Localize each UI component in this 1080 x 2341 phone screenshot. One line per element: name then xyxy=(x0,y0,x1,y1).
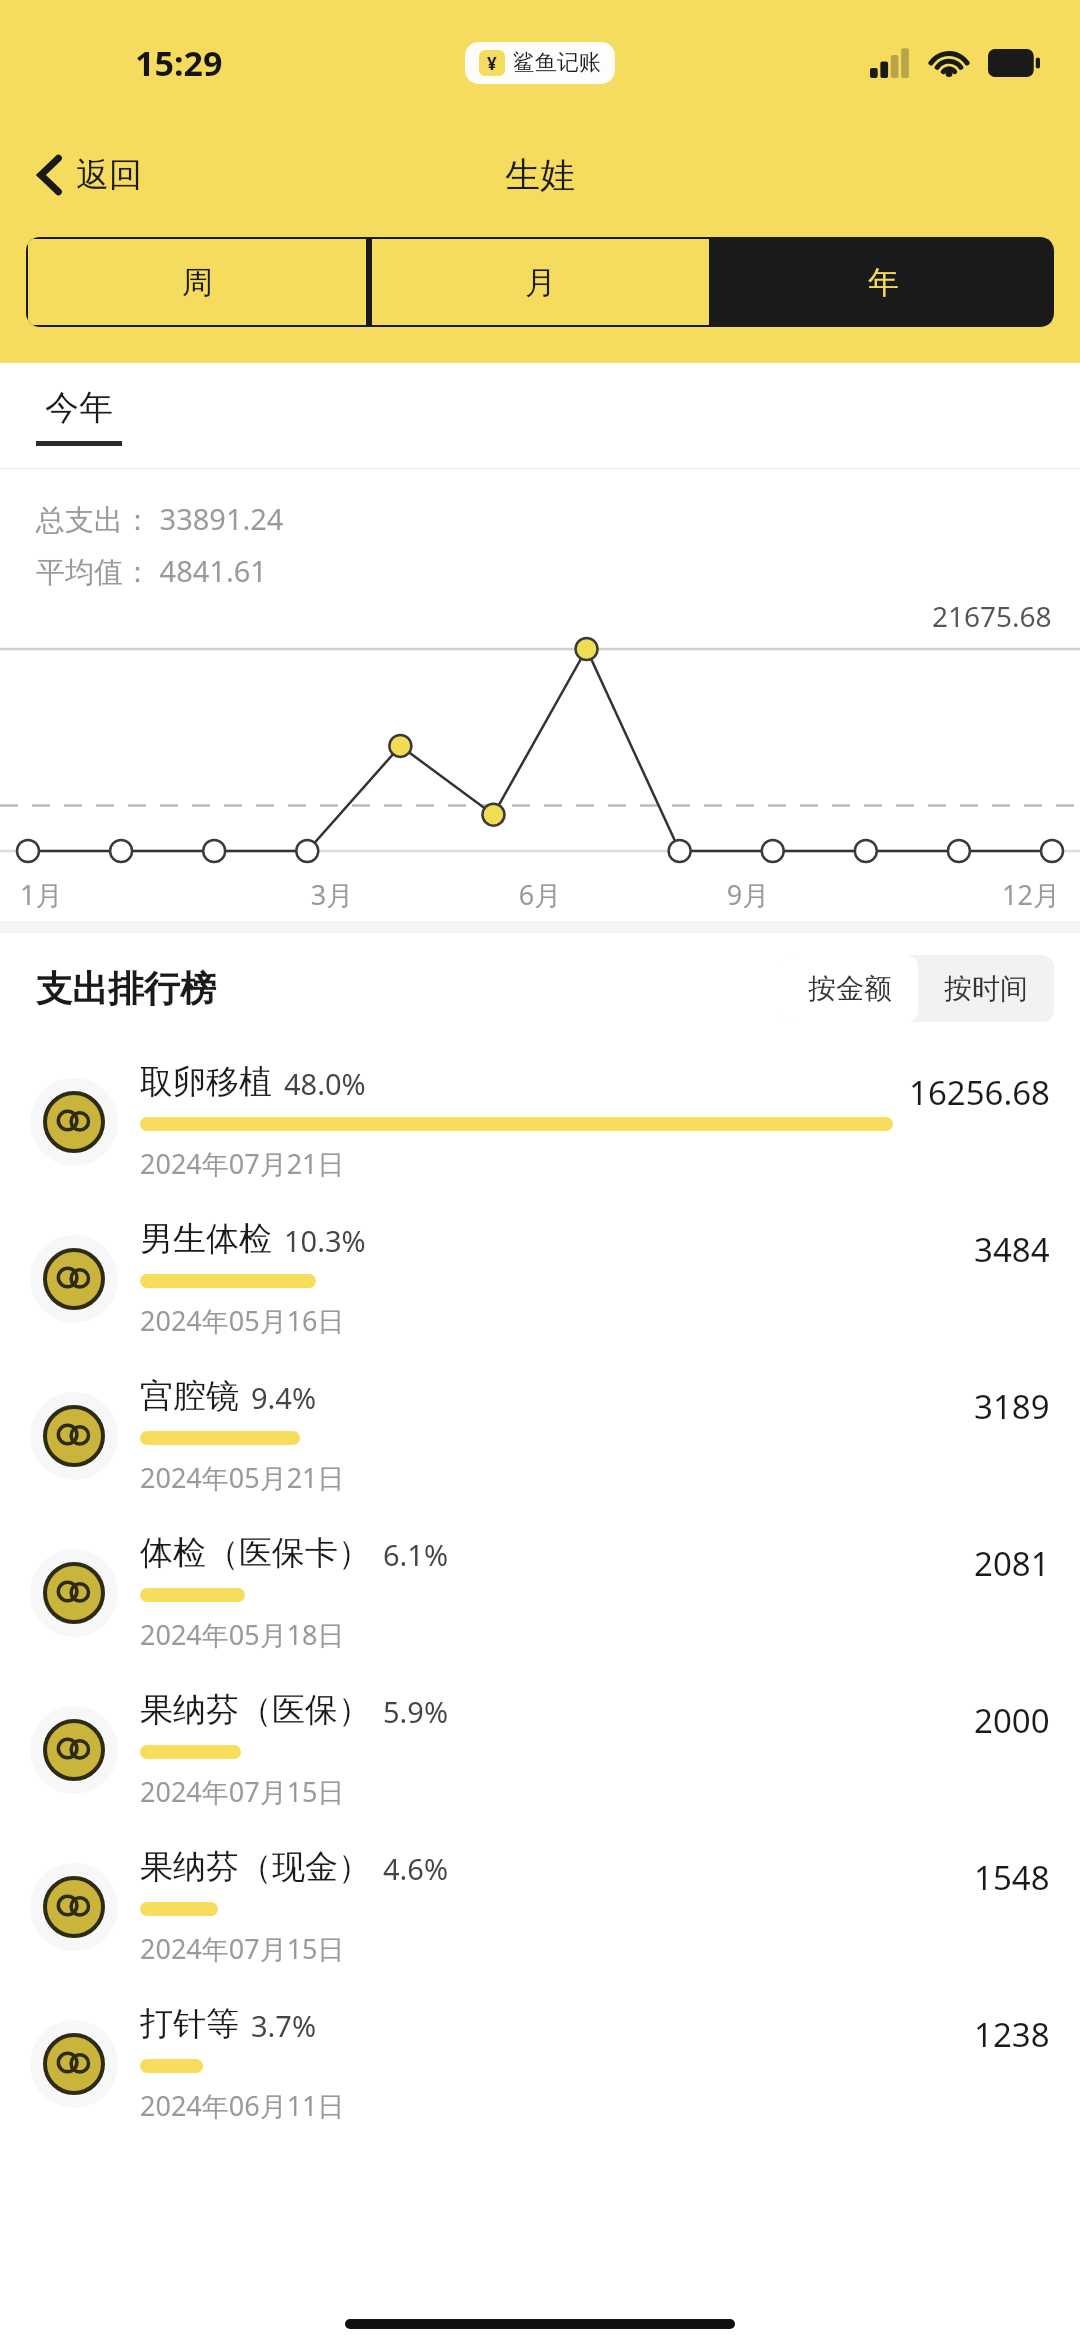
staticText: 2024年05月18日 xyxy=(140,1616,345,1653)
staticText: 16256.68 xyxy=(909,1070,1050,1115)
staticText: 体检（医保卡） xyxy=(140,1532,371,1574)
staticText: 9.4% xyxy=(251,1378,317,1417)
button[interactable]: 男生体检 xyxy=(0,1200,1080,1357)
staticText: 男生体检 xyxy=(140,1218,272,1260)
button[interactable]: 年 xyxy=(715,239,1052,325)
button[interactable]: 果纳芬（现金） xyxy=(0,1828,1080,1985)
button[interactable]: 体检（医保卡） xyxy=(0,1514,1080,1671)
staticText: 10.3% xyxy=(284,1221,366,1260)
staticText: 鲨鱼记账 xyxy=(513,49,601,77)
staticText: ¥ xyxy=(487,52,497,75)
staticText: 宫腔镜 xyxy=(140,1375,239,1417)
staticText: 2024年07月21日 xyxy=(140,1145,345,1182)
button[interactable]: 按时间 xyxy=(918,955,1054,1022)
staticText: 1238 xyxy=(974,2012,1050,2057)
staticText: 2024年05月16日 xyxy=(140,1302,345,1339)
staticText: 9月 xyxy=(644,876,852,913)
other: Battery xyxy=(988,49,1040,77)
staticText: 2000 xyxy=(974,1698,1050,1743)
staticText: 6月 xyxy=(436,876,644,913)
staticText: 打针等 xyxy=(140,2003,239,2045)
button[interactable]: 果纳芬（医保） xyxy=(0,1671,1080,1828)
staticText: 年 xyxy=(868,263,899,302)
staticText: 按金额 xyxy=(808,971,892,1006)
staticText: 2024年06月11日 xyxy=(140,2087,345,2124)
staticText: 3189 xyxy=(974,1384,1050,1429)
staticText: 2081 xyxy=(974,1541,1050,1586)
other: Wi-Fi xyxy=(930,48,968,78)
staticText: 6.1% xyxy=(383,1535,449,1574)
staticText: 2024年07月15日 xyxy=(140,1773,345,1810)
staticText: 今年 xyxy=(45,386,113,429)
staticText: 生娃 xyxy=(505,153,575,197)
staticText: 总支出： 33891.24 xyxy=(36,499,284,539)
staticText: 3484 xyxy=(974,1227,1050,1272)
button[interactable]: 按金额 xyxy=(782,955,918,1022)
staticText: 果纳芬（医保） xyxy=(140,1689,371,1731)
staticText: 平均值： 4841.61 xyxy=(36,551,267,591)
staticText: 12月 xyxy=(852,876,1060,913)
other: Signal xyxy=(870,48,910,78)
button[interactable]: 今年 xyxy=(36,386,122,446)
button[interactable]: 返回 xyxy=(34,148,146,202)
staticText: 月 xyxy=(525,263,556,302)
button[interactable]: 取卵移植 xyxy=(0,1043,1080,1200)
staticText: 15:29 xyxy=(135,40,223,86)
staticText: 4.6% xyxy=(383,1849,449,1888)
staticText: 2024年05月21日 xyxy=(140,1459,345,1496)
staticText: 2024年07月15日 xyxy=(140,1930,345,1967)
button[interactable]: 周 xyxy=(28,239,366,325)
staticText: 支出排行榜 xyxy=(36,966,216,1011)
staticText: 48.0% xyxy=(284,1064,366,1103)
staticText: 周 xyxy=(182,263,213,302)
staticText: 果纳芬（现金） xyxy=(140,1846,371,1888)
staticText: 5.9% xyxy=(383,1692,449,1731)
staticText: 1月 xyxy=(20,876,228,913)
staticText: 按时间 xyxy=(944,971,1028,1006)
button[interactable]: 打针等 xyxy=(0,1985,1080,2142)
staticText: 取卵移植 xyxy=(140,1061,272,1103)
staticText: 返回 xyxy=(76,154,142,196)
button[interactable]: 宫腔镜 xyxy=(0,1357,1080,1514)
staticText: 3.7% xyxy=(251,2006,317,2045)
staticText: 1548 xyxy=(974,1855,1050,1900)
staticText: 3月 xyxy=(228,876,436,913)
staticText: 21675.68 xyxy=(932,597,1052,635)
button[interactable]: 月 xyxy=(372,239,709,325)
